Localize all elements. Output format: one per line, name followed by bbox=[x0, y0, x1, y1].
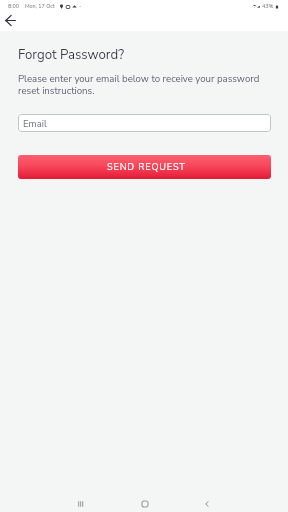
button[interactable]: Recent apps bbox=[70, 493, 92, 512]
staticText: Mon, 17 Oct bbox=[25, 3, 55, 10]
staticText: Please enter your email below to receive… bbox=[18, 72, 271, 97]
button[interactable]: Back bbox=[0, 9, 21, 31]
staticText: SEND REQUEST bbox=[107, 161, 186, 174]
staticText: - bbox=[79, 3, 82, 10]
staticText: 8:00 bbox=[8, 3, 19, 10]
button[interactable]: SEND REQUEST bbox=[18, 155, 271, 179]
staticText: Forgot Password? bbox=[18, 46, 125, 64]
staticText: 43% bbox=[262, 3, 274, 10]
staticText: Email bbox=[23, 117, 47, 130]
button[interactable]: Email bbox=[18, 114, 271, 132]
button[interactable]: Home bbox=[134, 493, 156, 512]
button[interactable]: Back bbox=[196, 493, 218, 512]
